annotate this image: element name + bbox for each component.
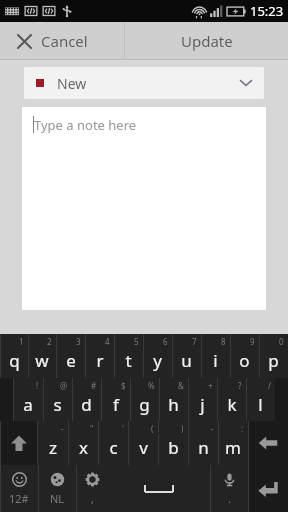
- button[interactable]: Language: [38, 465, 76, 512]
- button[interactable]: Shift: [0, 421, 37, 465]
- staticText: 4: [105, 336, 110, 347]
- button[interactable]: Voice input: [210, 465, 248, 512]
- staticText: -: [61, 423, 64, 434]
- staticText: x: [79, 436, 88, 459]
- button[interactable]: Update: [125, 22, 288, 60]
- button[interactable]: Backspace: [248, 421, 288, 465]
- staticText: 12#: [9, 491, 29, 506]
- staticText: z: [49, 436, 57, 459]
- staticText: .: [228, 491, 231, 506]
- button[interactable]: (: [128, 421, 158, 465]
- staticText: 9: [250, 336, 255, 347]
- button[interactable]: /: [246, 378, 275, 421]
- staticText: o: [239, 349, 250, 372]
- staticText: k: [227, 393, 237, 416]
- button[interactable]: Space: [108, 465, 210, 512]
- staticText: $: [121, 380, 126, 391]
- staticText: 7: [192, 336, 197, 347]
- staticText: d: [81, 393, 92, 416]
- button[interactable]: 6: [143, 334, 172, 378]
- button[interactable]: 0: [259, 334, 288, 378]
- staticText: ,: [91, 491, 94, 506]
- staticText: !: [36, 380, 39, 391]
- staticText: f: [113, 393, 119, 416]
- staticText: 0: [279, 336, 284, 347]
- button[interactable]: %: [130, 378, 159, 421]
- staticText: u: [181, 349, 192, 372]
- staticText: Cancel: [41, 31, 88, 51]
- button[interactable]: !: [13, 378, 43, 421]
- button[interactable]: Cancel: [0, 22, 124, 60]
- button[interactable]: &: [159, 378, 188, 421]
- staticText: New: [57, 74, 87, 93]
- staticText: t: [125, 349, 132, 372]
- staticText: j: [200, 393, 205, 416]
- staticText: ': [122, 423, 124, 434]
- staticText: h: [168, 393, 179, 416]
- staticText: q: [9, 349, 20, 372]
- button[interactable]: Symbols: [0, 465, 38, 512]
- staticText: 15:23: [250, 2, 284, 20]
- staticText: %: [148, 380, 155, 391]
- button[interactable]: 8: [201, 334, 230, 378]
- button[interactable]: 2: [28, 334, 56, 378]
- staticText: 8: [221, 336, 226, 347]
- staticText: &: [178, 380, 184, 391]
- staticText: p: [268, 349, 279, 372]
- button[interactable]: :: [218, 421, 248, 465]
- button[interactable]: +: [188, 378, 217, 421]
- staticText: w: [35, 349, 49, 372]
- button[interactable]: 3: [56, 334, 85, 378]
- button[interactable]: @: [43, 378, 72, 421]
- button[interactable]: New: [24, 67, 264, 99]
- staticText: ?: [238, 380, 242, 391]
- staticText: g: [139, 393, 150, 416]
- button[interactable]: Settings: [76, 465, 108, 512]
- staticText: 1: [19, 336, 24, 347]
- staticText: @: [60, 380, 68, 391]
- staticText: NL: [50, 491, 65, 506]
- button[interactable]: -: [188, 421, 218, 465]
- button[interactable]: Type a note here: [22, 107, 266, 310]
- staticText: s: [53, 393, 62, 416]
- staticText: c: [109, 436, 118, 459]
- staticText: Type a note here: [34, 116, 137, 134]
- button[interactable]: ': [98, 421, 128, 465]
- button[interactable]: ": [68, 421, 98, 465]
- staticText: Update: [181, 31, 233, 51]
- staticText: n: [198, 436, 209, 459]
- staticText: l: [258, 393, 263, 416]
- staticText: e: [66, 349, 76, 372]
- staticText: #: [91, 380, 97, 391]
- staticText: i: [213, 349, 218, 372]
- button[interactable]: Enter: [248, 465, 288, 512]
- staticText: r: [96, 349, 104, 372]
- button[interactable]: 4: [85, 334, 114, 378]
- staticText: m: [225, 436, 241, 459]
- staticText: y: [153, 349, 162, 372]
- staticText: 5: [134, 336, 139, 347]
- staticText: (: [151, 423, 154, 434]
- button[interactable]: ?: [217, 378, 246, 421]
- staticText: ": [90, 423, 94, 434]
- button[interactable]: 9: [230, 334, 259, 378]
- staticText: b: [168, 436, 179, 459]
- staticText: +: [208, 380, 213, 391]
- button[interactable]: -: [37, 421, 68, 465]
- staticText: ): [181, 423, 184, 434]
- button[interactable]: 1: [0, 334, 28, 378]
- button[interactable]: 5: [114, 334, 143, 378]
- staticText: -: [211, 423, 214, 434]
- button[interactable]: #: [72, 378, 101, 421]
- staticText: a: [23, 393, 33, 416]
- staticText: 3: [76, 336, 81, 347]
- staticText: 2: [47, 336, 52, 347]
- staticText: /: [268, 380, 271, 391]
- button[interactable]: $: [101, 378, 130, 421]
- button[interactable]: 7: [172, 334, 201, 378]
- staticText: 6: [163, 336, 168, 347]
- button[interactable]: ): [158, 421, 188, 465]
- staticText: v: [139, 436, 148, 459]
- staticText: :: [241, 423, 244, 434]
